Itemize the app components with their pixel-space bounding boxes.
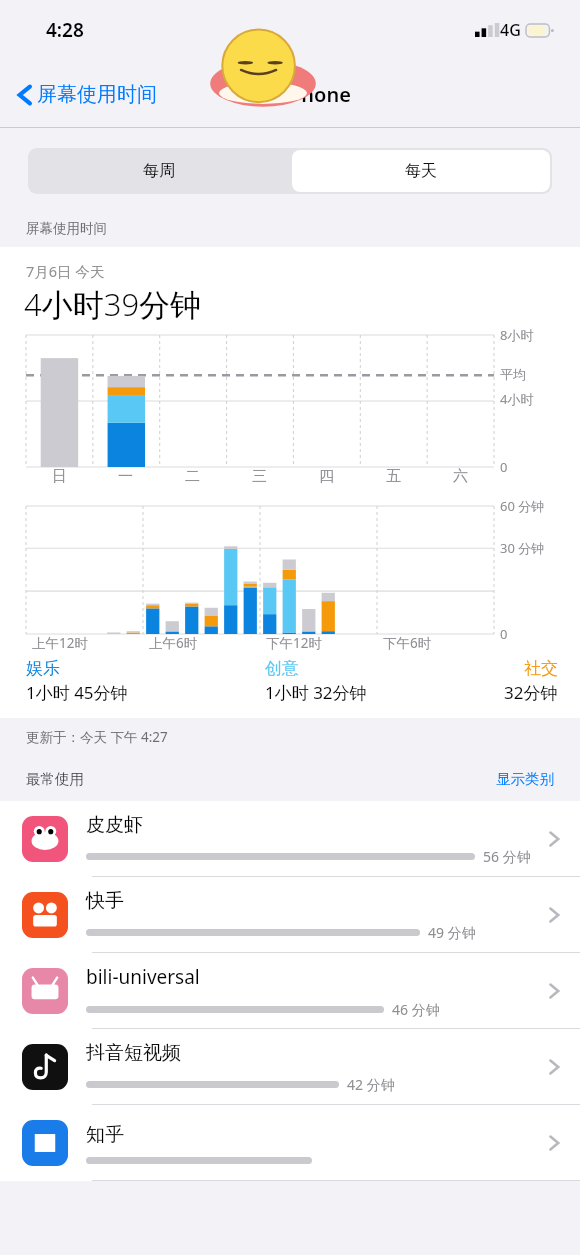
staticText: 创意 bbox=[265, 658, 299, 679]
staticText: 四 bbox=[319, 467, 334, 486]
button[interactable]: 每天 bbox=[292, 150, 550, 192]
staticText: 49 分钟 bbox=[428, 923, 476, 942]
staticText: Phone bbox=[289, 81, 351, 108]
staticText: 一 bbox=[118, 467, 133, 486]
staticText: 更新于：今天 下午 4:27 bbox=[26, 728, 168, 746]
staticText: 社交 bbox=[524, 658, 558, 679]
staticText: 抖音短视频 bbox=[86, 1041, 181, 1065]
button[interactable]: 快手 bbox=[0, 877, 580, 953]
staticText: 二 bbox=[185, 467, 200, 486]
staticText: 屏幕使用时间 bbox=[37, 82, 157, 107]
staticText: 30 分钟 bbox=[500, 539, 545, 557]
button[interactable]: 显示类别 bbox=[496, 770, 554, 788]
staticText: 4G bbox=[500, 19, 521, 41]
staticText: 下午6时 bbox=[383, 634, 432, 652]
staticText: 7月6日 今天 bbox=[26, 261, 105, 281]
other: 查看详情 bbox=[548, 1133, 560, 1153]
other: 查看详情 bbox=[548, 981, 560, 1001]
staticText: 下午12时 bbox=[266, 634, 322, 652]
staticText: 日 bbox=[52, 467, 67, 486]
other: 查看详情 bbox=[548, 905, 560, 925]
button[interactable]: 皮皮虾 bbox=[0, 801, 580, 877]
staticText: 显示类别 bbox=[496, 770, 554, 788]
staticText: 快手 bbox=[86, 889, 124, 913]
staticText: 每周 bbox=[143, 161, 175, 181]
staticText: 0 bbox=[500, 625, 508, 643]
staticText: 4小时39分钟 bbox=[24, 283, 202, 325]
staticText: 屏幕使用时间 bbox=[26, 220, 107, 237]
staticText: 8小时 bbox=[500, 326, 534, 344]
staticText: 4小时 bbox=[500, 390, 534, 408]
staticText: 4:28 bbox=[46, 17, 84, 43]
staticText: 每天 bbox=[405, 161, 437, 181]
staticText: 0 bbox=[500, 458, 508, 476]
staticText: 平均 bbox=[500, 366, 526, 382]
staticText: 三 bbox=[252, 467, 267, 486]
button[interactable]: 每周 bbox=[28, 148, 290, 194]
staticText: 46 分钟 bbox=[392, 1000, 440, 1019]
button[interactable]: 知乎 bbox=[0, 1105, 580, 1181]
staticText: 56 分钟 bbox=[483, 847, 531, 866]
staticText: 上午6时 bbox=[149, 634, 198, 652]
staticText: 皮皮虾 bbox=[86, 813, 143, 837]
staticText: bili-universal bbox=[86, 964, 200, 990]
button[interactable]: bili-universal bbox=[0, 953, 580, 1029]
other: 查看详情 bbox=[548, 1057, 560, 1077]
button[interactable]: 抖音短视频 bbox=[0, 1029, 580, 1105]
staticText: 上午12时 bbox=[32, 634, 88, 652]
staticText: 六 bbox=[453, 467, 468, 486]
staticText: 32分钟 bbox=[504, 681, 558, 704]
staticText: 42 分钟 bbox=[347, 1075, 395, 1094]
staticText: 1小时 45分钟 bbox=[26, 681, 128, 704]
staticText: 1小时 32分钟 bbox=[265, 681, 367, 704]
staticText: 娱乐 bbox=[26, 658, 60, 679]
staticText: 60 分钟 bbox=[500, 497, 545, 515]
button[interactable]: 屏幕使用时间 bbox=[18, 82, 157, 107]
staticText: 最常使用 bbox=[26, 770, 84, 788]
staticText: 知乎 bbox=[86, 1123, 124, 1147]
other: 查看详情 bbox=[548, 829, 560, 849]
staticText: 五 bbox=[386, 467, 401, 486]
